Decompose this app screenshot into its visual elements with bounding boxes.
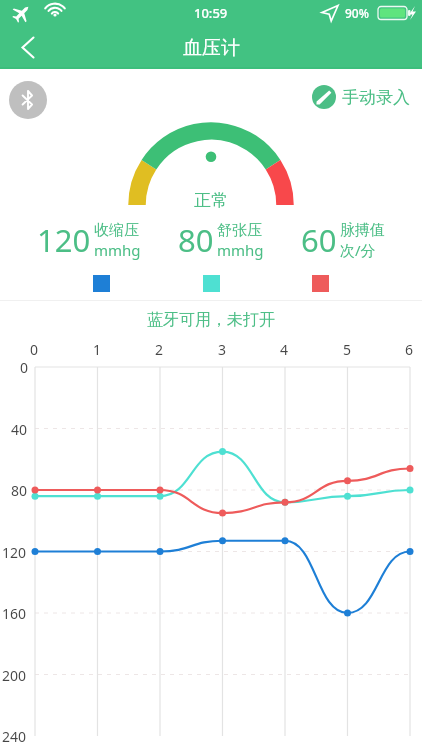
- staticText: mmhg: [94, 240, 141, 260]
- staticText: 脉搏值: [340, 221, 385, 240]
- staticText: 80: [178, 219, 214, 261]
- staticText: 4: [280, 340, 289, 359]
- staticText: 3: [218, 340, 227, 359]
- staticText: 血压计: [183, 36, 240, 60]
- staticText: 0: [30, 340, 39, 359]
- staticText: 240: [2, 727, 27, 746]
- staticText: mmhg: [217, 240, 264, 260]
- staticText: 收缩压: [94, 221, 139, 240]
- staticText: 80: [11, 481, 28, 500]
- staticText: 120: [37, 219, 91, 261]
- button[interactable]: 手动录入: [312, 85, 410, 109]
- staticText: 6: [405, 340, 414, 359]
- staticText: 0: [20, 358, 29, 377]
- staticText: 蓝牙可用，未打开: [147, 310, 275, 330]
- staticText: 120: [2, 543, 27, 562]
- staticText: 2: [155, 340, 164, 359]
- staticText: 手动录入: [342, 87, 410, 108]
- staticText: 正常: [194, 190, 228, 211]
- staticText: 200: [2, 666, 27, 685]
- staticText: 60: [301, 219, 337, 261]
- staticText: 5: [343, 340, 352, 359]
- staticText: 90%: [345, 5, 369, 21]
- staticText: 10:59: [194, 4, 228, 22]
- button[interactable]: Back: [6, 26, 50, 69]
- staticText: 160: [2, 604, 27, 623]
- button[interactable]: Bluetooth: [9, 81, 47, 119]
- staticText: 舒张压: [217, 221, 262, 240]
- staticText: 次/分: [340, 240, 376, 260]
- staticText: 1: [93, 340, 102, 359]
- staticText: 40: [11, 420, 28, 439]
